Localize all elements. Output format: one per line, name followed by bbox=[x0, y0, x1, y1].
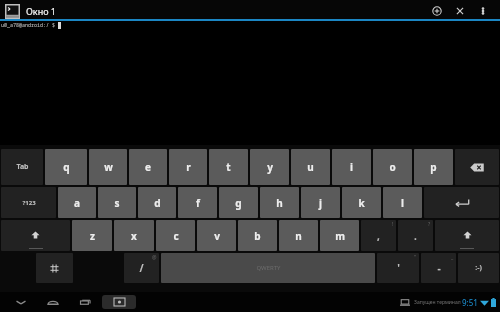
button[interactable]: / bbox=[124, 253, 159, 283]
button[interactable]: a bbox=[58, 187, 96, 218]
staticText: x bbox=[131, 229, 137, 243]
staticText: Запущен терминал bbox=[414, 299, 461, 306]
staticText: o bbox=[389, 160, 396, 174]
staticText: t bbox=[226, 160, 231, 174]
staticText: j bbox=[319, 196, 322, 210]
staticText: n bbox=[295, 229, 302, 243]
staticText: z bbox=[90, 229, 95, 243]
button[interactable]: More options bbox=[471, 0, 494, 21]
button[interactable]: , bbox=[361, 220, 396, 251]
button[interactable]: w bbox=[89, 149, 127, 185]
staticText: @ bbox=[152, 254, 157, 261]
button[interactable]: y bbox=[250, 149, 289, 185]
staticText: :-) bbox=[475, 263, 482, 273]
staticText: _ bbox=[451, 254, 454, 261]
staticText: QWERTY bbox=[256, 264, 281, 272]
button[interactable]: - bbox=[421, 253, 456, 283]
staticText: , bbox=[377, 229, 380, 243]
staticText: p bbox=[430, 160, 437, 174]
button[interactable]: h bbox=[260, 187, 299, 218]
button[interactable]: Choose input method bbox=[102, 295, 136, 309]
staticText: Tab bbox=[16, 162, 29, 172]
button[interactable]: Keyboard settings bbox=[36, 253, 73, 283]
button[interactable]: f bbox=[178, 187, 217, 218]
button[interactable]: b bbox=[238, 220, 277, 251]
button[interactable]: Окно 1 bbox=[26, 0, 425, 21]
staticText: r bbox=[186, 160, 191, 174]
button[interactable]: Add window bbox=[425, 0, 448, 21]
button[interactable]: Notification bbox=[397, 294, 413, 310]
button[interactable]: Backspace bbox=[455, 149, 499, 185]
button[interactable]: c bbox=[156, 220, 195, 251]
button[interactable]: ?123 bbox=[1, 187, 56, 218]
staticText: w bbox=[104, 160, 113, 174]
button[interactable]: :-) bbox=[458, 253, 499, 283]
staticText: d bbox=[154, 196, 161, 210]
staticText: . bbox=[414, 229, 417, 243]
button[interactable]: o bbox=[373, 149, 412, 185]
staticText: k bbox=[358, 196, 365, 210]
staticText: m bbox=[335, 229, 345, 243]
staticText: c bbox=[173, 229, 179, 243]
button[interactable]: r bbox=[169, 149, 207, 185]
button[interactable]: Recent apps bbox=[76, 294, 94, 310]
staticText: " bbox=[414, 254, 417, 261]
staticText: e bbox=[145, 160, 151, 174]
staticText: s bbox=[114, 196, 120, 210]
staticText: l bbox=[401, 196, 404, 210]
staticText: ?123 bbox=[22, 199, 36, 207]
button[interactable]: Tab bbox=[1, 149, 43, 185]
button[interactable]: d bbox=[138, 187, 176, 218]
staticText: f bbox=[196, 196, 200, 210]
button[interactable]: Hide keyboard bbox=[12, 294, 30, 310]
staticText: h bbox=[276, 196, 283, 210]
staticText: Окно 1 bbox=[26, 5, 56, 17]
button[interactable]: k bbox=[342, 187, 381, 218]
button[interactable]: l bbox=[383, 187, 422, 218]
button[interactable]: i bbox=[332, 149, 371, 185]
button[interactable]: ' bbox=[377, 253, 419, 283]
button[interactable]: Shift bbox=[1, 220, 70, 251]
button[interactable]: Terminal app icon bbox=[4, 3, 20, 19]
button[interactable]: Shift bbox=[435, 220, 499, 251]
button[interactable]: e bbox=[129, 149, 167, 185]
button[interactable]: Enter bbox=[424, 187, 499, 218]
staticText: a bbox=[74, 196, 80, 210]
button[interactable]: q bbox=[45, 149, 87, 185]
button[interactable]: v bbox=[197, 220, 236, 251]
staticText: b bbox=[254, 229, 261, 243]
staticText: g bbox=[235, 196, 242, 210]
staticText: u bbox=[307, 160, 314, 174]
staticText: u0_a78@android:/ $ bbox=[1, 22, 56, 29]
button[interactable]: s bbox=[98, 187, 136, 218]
button[interactable]: 9:51 bbox=[462, 297, 478, 308]
staticText: ? bbox=[428, 221, 431, 228]
staticText: i bbox=[350, 160, 353, 174]
button[interactable]: g bbox=[219, 187, 258, 218]
button[interactable]: x bbox=[114, 220, 154, 251]
staticText: q bbox=[63, 160, 70, 174]
button[interactable]: m bbox=[320, 220, 359, 251]
button[interactable]: Close window bbox=[448, 0, 471, 21]
staticText: ' bbox=[397, 261, 400, 275]
button[interactable]: n bbox=[279, 220, 318, 251]
staticText: / bbox=[139, 261, 144, 275]
staticText: - bbox=[437, 261, 441, 275]
staticText: 9:51 bbox=[462, 297, 478, 308]
button[interactable]: z bbox=[72, 220, 112, 251]
button[interactable]: p bbox=[414, 149, 453, 185]
staticText: y bbox=[267, 160, 273, 174]
button[interactable]: j bbox=[301, 187, 340, 218]
button[interactable]: u bbox=[291, 149, 330, 185]
button[interactable]: . bbox=[398, 220, 433, 251]
staticText: v bbox=[214, 229, 220, 243]
button[interactable]: Home bbox=[44, 294, 62, 310]
button[interactable]: t bbox=[209, 149, 248, 185]
staticText: ! bbox=[392, 221, 394, 228]
